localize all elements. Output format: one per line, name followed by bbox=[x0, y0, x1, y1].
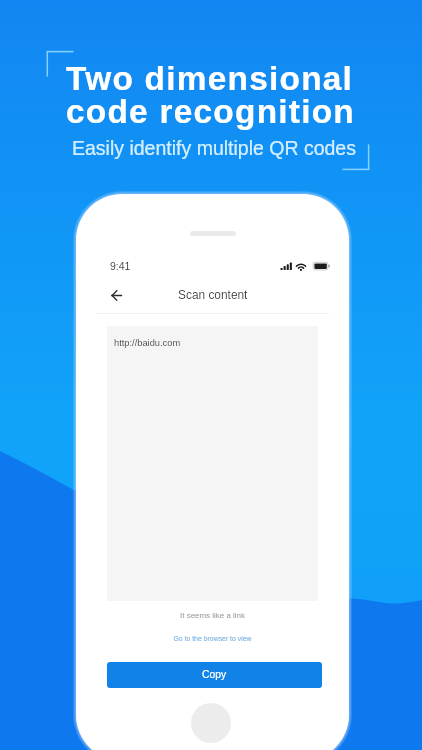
staticText: Go to the browser to view bbox=[76, 635, 349, 643]
staticText: Two dimensional bbox=[66, 60, 354, 97]
button[interactable]: Home bbox=[191, 703, 231, 743]
button[interactable]: Back bbox=[102, 282, 130, 308]
staticText: http://baidu.com bbox=[114, 338, 181, 348]
staticText: 9:41 bbox=[110, 260, 131, 272]
button[interactable]: Copy bbox=[107, 662, 322, 688]
staticText: Scan content bbox=[178, 288, 248, 301]
staticText: Copy bbox=[202, 669, 227, 681]
staticText: Easily identify multiple QR codes bbox=[72, 137, 356, 159]
staticText: code recognition bbox=[66, 93, 356, 130]
button[interactable]: Go to the browser to view bbox=[76, 635, 349, 649]
staticText: It seems like a link bbox=[76, 611, 349, 620]
